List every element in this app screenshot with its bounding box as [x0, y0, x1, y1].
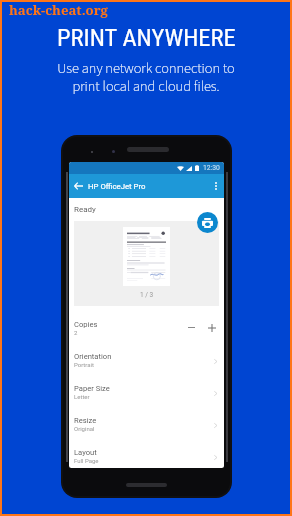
staticText: Ready — [74, 205, 96, 214]
staticText: Letter — [74, 393, 90, 400]
button[interactable]: Increase copies — [204, 319, 220, 336]
staticText: 12:30 — [203, 164, 220, 172]
staticText: Full Page — [74, 457, 99, 464]
staticText: Paper Size — [74, 384, 110, 393]
staticText: Layout — [74, 448, 97, 457]
button[interactable]: Back — [69, 174, 88, 198]
staticText: hack-cheat.org — [9, 1, 108, 19]
staticText: Portrait — [74, 361, 94, 368]
button[interactable]: Orientation — [69, 338, 224, 370]
staticText: HP OfficeJet Pro — [88, 182, 146, 191]
staticText: Resize — [74, 416, 97, 425]
button[interactable]: Layout — [69, 434, 224, 466]
staticText: Orientation — [74, 352, 112, 361]
staticText: 1 / 3 — [140, 291, 154, 299]
button[interactable]: Resize — [69, 402, 224, 434]
staticText: Original — [74, 425, 95, 432]
staticText: Use any network connection to print loca… — [57, 58, 235, 96]
button[interactable]: Decrease copies — [183, 319, 199, 336]
button[interactable]: Paper Size — [69, 370, 224, 402]
button[interactable]: Copies — [69, 306, 224, 338]
staticText: Copies — [74, 320, 98, 329]
button[interactable]: More options — [208, 174, 224, 198]
staticText: PRINT ANYWHERE — [57, 23, 236, 52]
button[interactable]: Print — [197, 212, 218, 233]
staticText: 2 — [74, 329, 78, 336]
